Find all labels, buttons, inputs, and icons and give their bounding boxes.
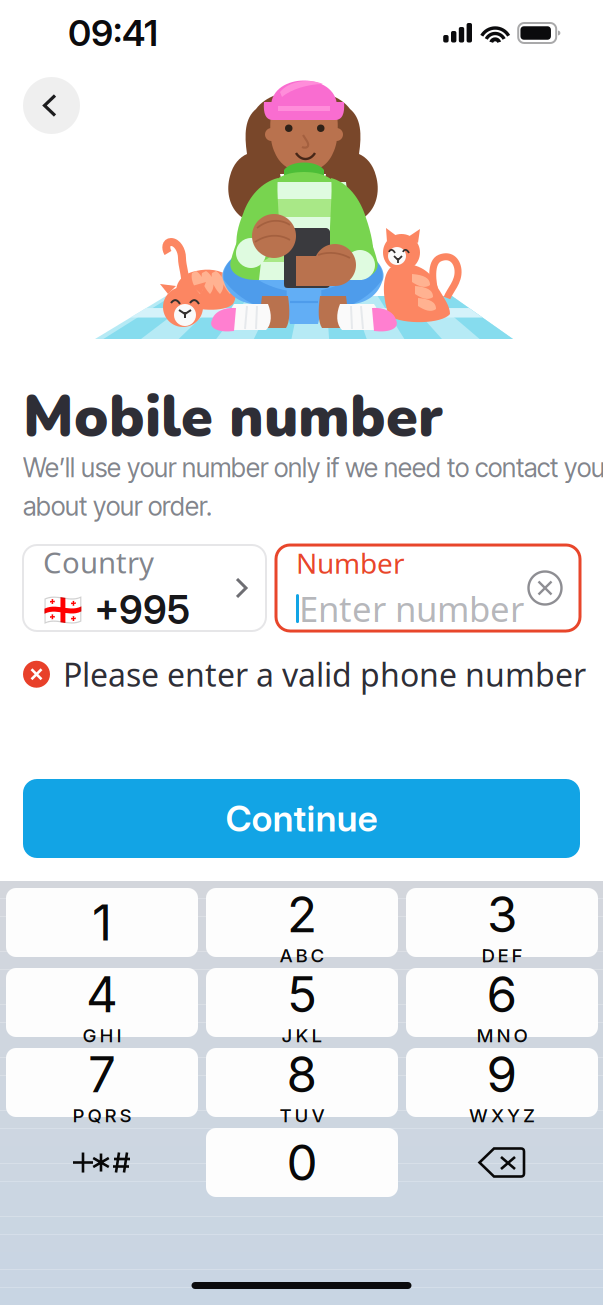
button[interactable]: 7: [6, 1048, 198, 1117]
staticText: Country: [43, 543, 154, 582]
staticText: Continue: [225, 797, 377, 840]
staticText: 6: [486, 964, 517, 1024]
staticText: Enter number: [299, 586, 524, 632]
staticText: W X Y Z: [469, 1104, 535, 1127]
button[interactable]: Symbols: [6, 1128, 198, 1197]
button[interactable]: Number: [276, 545, 580, 631]
button[interactable]: Continue: [23, 779, 580, 858]
staticText: +995: [94, 587, 190, 633]
staticText: 1: [92, 893, 112, 952]
button[interactable]: 9: [406, 1048, 598, 1117]
button[interactable]: Back: [23, 77, 80, 134]
staticText: D E F: [481, 944, 522, 967]
staticText: 9: [486, 1044, 517, 1104]
button[interactable]: 2: [206, 888, 398, 957]
staticText: 🇬🇪: [43, 592, 83, 628]
button[interactable]: 0: [206, 1128, 398, 1197]
staticText: 7: [88, 1044, 116, 1104]
staticText: 8: [286, 1044, 317, 1104]
staticText: Number: [296, 544, 405, 582]
staticText: 4: [86, 964, 118, 1024]
button[interactable]: 6: [406, 968, 598, 1037]
staticText: about your order.: [23, 490, 212, 522]
button[interactable]: 4: [6, 968, 198, 1037]
staticText: T U V: [279, 1104, 324, 1127]
staticText: We’ll use your number only if we need to…: [23, 452, 603, 483]
staticText: G H I: [82, 1024, 121, 1047]
staticText: 3: [487, 884, 517, 944]
staticText: 09:41: [68, 11, 158, 55]
staticText: 2: [287, 884, 317, 944]
button[interactable]: 8: [206, 1048, 398, 1117]
button[interactable]: Country: [23, 545, 266, 631]
button[interactable]: 3: [406, 888, 598, 957]
staticText: P Q R S: [72, 1104, 131, 1127]
button[interactable]: Delete: [406, 1128, 598, 1197]
staticText: Mobile number: [23, 378, 443, 456]
staticText: A B C: [279, 944, 324, 967]
staticText: 5: [287, 964, 317, 1024]
button[interactable]: 5: [206, 968, 398, 1037]
button[interactable]: 1: [6, 888, 198, 957]
staticText: 0: [286, 1133, 317, 1192]
staticText: J K L: [281, 1024, 322, 1047]
staticText: Please enter a valid phone number: [63, 653, 586, 695]
staticText: M N O: [476, 1024, 527, 1047]
